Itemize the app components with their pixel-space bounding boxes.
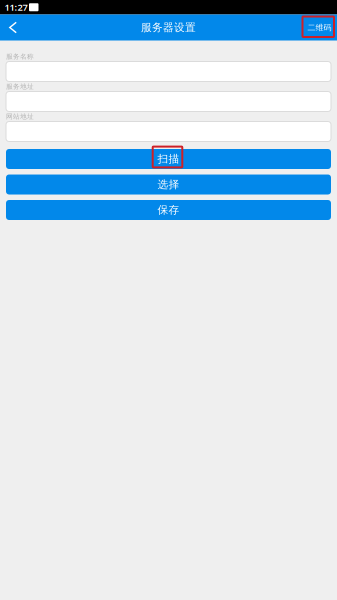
- staticText: 选择: [157, 178, 179, 191]
- button[interactable]: Back: [4, 14, 21, 40]
- button[interactable]: 保存: [6, 200, 331, 220]
- staticText: 服务名称: [6, 52, 34, 61]
- button[interactable]: [6, 61, 331, 81]
- staticText: 保存: [157, 203, 179, 216]
- staticText: 扫描: [157, 152, 179, 165]
- button[interactable]: 二维码: [303, 14, 335, 40]
- staticText: 二维码: [307, 23, 331, 32]
- button[interactable]: 扫描: [6, 149, 331, 169]
- staticText: 网站地址: [6, 112, 34, 121]
- button[interactable]: [6, 91, 331, 111]
- staticText: 11:27: [4, 1, 27, 13]
- button[interactable]: [6, 121, 331, 141]
- staticText: 服务地址: [6, 82, 34, 91]
- button[interactable]: 选择: [6, 174, 331, 194]
- staticText: 服务器设置: [141, 21, 196, 34]
